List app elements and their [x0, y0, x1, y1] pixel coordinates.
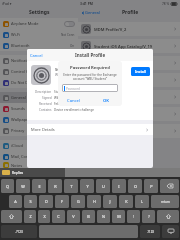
button[interactable]: OK — [90, 96, 122, 106]
button[interactable]: H — [87, 195, 101, 208]
button[interactable]: M — [112, 210, 125, 223]
staticText: V — [72, 214, 75, 219]
staticText: Not Conn — [61, 33, 75, 37]
button[interactable]: C — [52, 210, 65, 223]
button[interactable]: E — [32, 179, 46, 193]
button[interactable]: S — [24, 195, 37, 208]
button[interactable]: L — [135, 195, 149, 208]
button[interactable]: General — [81, 10, 100, 15]
button[interactable]: Cancel — [58, 96, 90, 106]
staticText: H — [93, 199, 96, 204]
button[interactable]: Cancel — [30, 53, 43, 58]
button[interactable]: B — [82, 210, 95, 223]
button[interactable]: J — [103, 195, 117, 208]
staticText: Contains — [39, 108, 52, 112]
staticText: Install — [135, 69, 146, 74]
staticText: 78 % — [162, 2, 170, 6]
button[interactable]: Do Not Disturb — [0, 77, 78, 88]
staticText: Student iOS App Catalog/V_19 — [94, 44, 153, 49]
button[interactable]: iCloud — [0, 140, 78, 151]
staticText: C — [57, 214, 60, 219]
staticText: N — [102, 214, 105, 219]
button[interactable]: ? — [142, 210, 155, 223]
staticText: General — [85, 10, 100, 15]
staticText: M — [117, 214, 121, 219]
staticText: Description — [35, 90, 52, 94]
button[interactable]: Sounds — [0, 103, 78, 114]
button[interactable]: R — [48, 179, 62, 193]
staticText: P — [150, 184, 153, 189]
button[interactable]: I — [112, 179, 126, 193]
button[interactable] — [78, 56, 180, 70]
staticText: L — [141, 199, 143, 204]
staticText: Privacy — [11, 128, 25, 133]
button[interactable]: P — [144, 179, 158, 193]
staticText: Password — [66, 87, 80, 91]
staticText: Control Center — [11, 69, 39, 74]
staticText: W — [21, 184, 25, 189]
button[interactable]: More Details — [27, 124, 153, 135]
button[interactable]: T — [64, 179, 78, 193]
button[interactable]: K — [119, 195, 133, 208]
staticText: G — [77, 199, 80, 204]
button[interactable]: Wallpaper — [0, 114, 78, 125]
button[interactable]: Z — [24, 210, 36, 223]
button[interactable]: Q — [1, 179, 14, 193]
staticText: Install Profile — [75, 52, 106, 58]
staticText: E — [38, 184, 41, 189]
button[interactable]: Wi-Fi — [0, 29, 78, 40]
button[interactable]: Shift — [1, 210, 22, 223]
button[interactable]: Install — [131, 67, 150, 76]
staticText: ? — [148, 214, 150, 219]
button[interactable]: General — [0, 92, 78, 103]
button[interactable]: U — [96, 179, 110, 193]
button[interactable]: Backspace — [160, 179, 179, 193]
button[interactable] — [78, 90, 180, 104]
staticText: Received — [39, 102, 52, 106]
button[interactable]: Privacy — [0, 125, 78, 136]
button[interactable]: .?123 — [140, 225, 160, 238]
staticText: S — [29, 199, 32, 204]
button[interactable]: Notifications — [0, 55, 78, 66]
button[interactable] — [78, 124, 180, 138]
staticText: Replies — [12, 171, 24, 175]
button[interactable]: Notes — [0, 162, 78, 168]
staticText: Q — [6, 184, 9, 189]
staticText: return — [161, 200, 170, 204]
button[interactable]: A — [9, 195, 22, 208]
button[interactable]: F — [55, 195, 69, 208]
button[interactable]: D — [39, 195, 53, 208]
button[interactable]: Y — [80, 179, 94, 193]
staticText: T — [70, 184, 73, 189]
button[interactable]: MDM Profile/V_2 — [78, 22, 180, 36]
staticText: Settings — [29, 9, 50, 16]
staticText: Wilkes University — [55, 73, 81, 77]
button[interactable]: W — [16, 179, 30, 193]
button[interactable]: Control Center — [0, 66, 78, 77]
button[interactable]: Mail, Contacts — [0, 151, 78, 162]
button[interactable]: V — [67, 210, 80, 223]
button[interactable] — [78, 73, 180, 87]
button[interactable]: Shift — [157, 210, 179, 223]
staticText: On — [70, 44, 75, 48]
button[interactable]: Student iOS App Catalog/V_19 — [78, 39, 180, 53]
button[interactable]: X — [38, 210, 50, 223]
staticText: R — [54, 184, 57, 189]
button[interactable]: Bluetooth — [0, 40, 78, 51]
button[interactable]: G — [71, 195, 85, 208]
staticText: F — [61, 199, 63, 204]
button[interactable]: Airplane Mode — [0, 18, 78, 29]
button[interactable]: return — [151, 195, 179, 208]
button[interactable] — [78, 107, 180, 121]
button[interactable]: O — [128, 179, 142, 193]
staticText: Notes — [11, 163, 23, 168]
button[interactable]: .?123 — [1, 225, 37, 238]
button[interactable]: Password — [62, 84, 118, 92]
staticText: Student iOS App Catalog — [55, 67, 103, 72]
staticText: .?123 — [15, 230, 23, 234]
button[interactable]: Hide keyboard — [162, 225, 179, 238]
button[interactable]: ! — [127, 210, 140, 223]
staticText: X — [43, 214, 46, 219]
button[interactable]: N — [97, 210, 110, 223]
